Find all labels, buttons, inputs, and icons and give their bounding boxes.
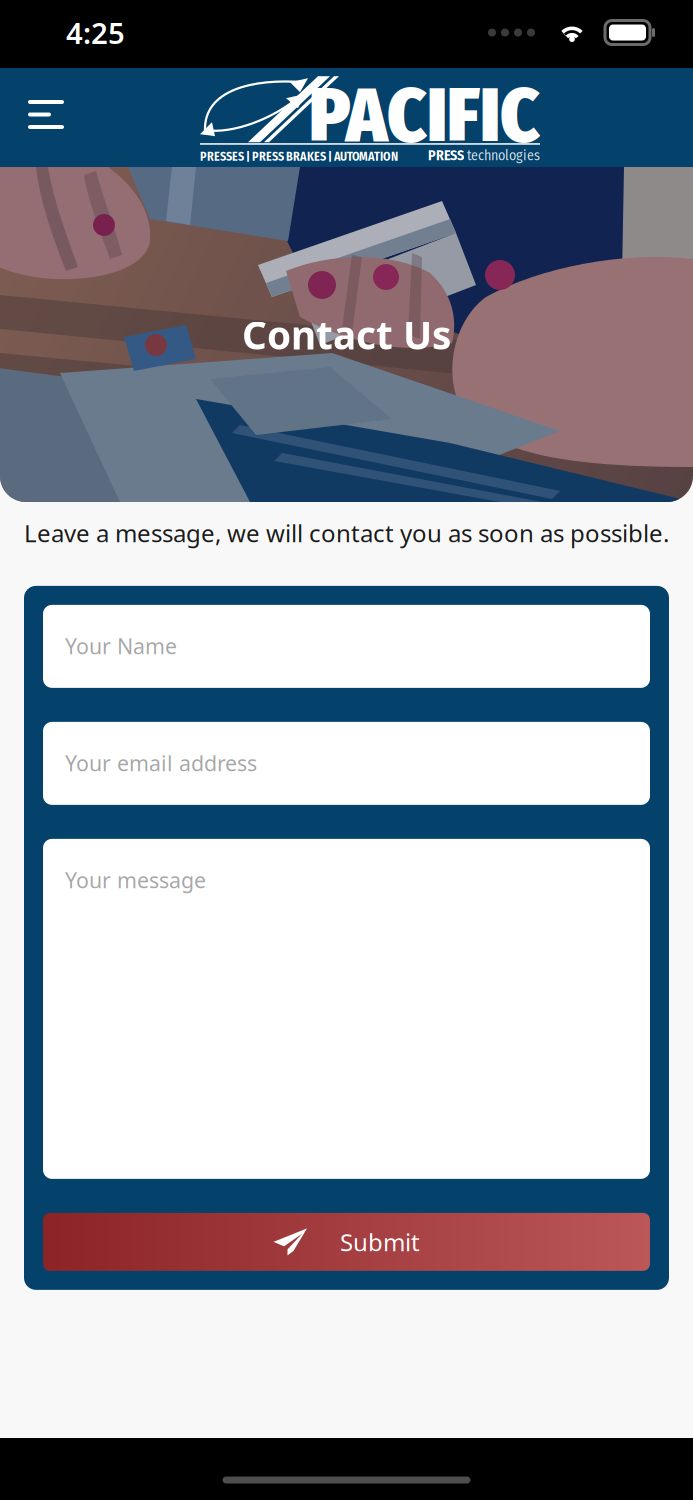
staticText: Submit — [340, 1226, 420, 1258]
staticText: 4:25 — [66, 13, 125, 52]
staticText: Your email address — [65, 749, 257, 777]
button[interactable]: Your Name — [43, 605, 650, 688]
staticText: technologies — [464, 147, 540, 164]
staticText: Contact Us — [242, 309, 451, 360]
staticText: PACIFIC — [309, 71, 540, 161]
button[interactable]: Your email address — [43, 722, 650, 805]
staticText: Leave a message, we will contact you as … — [24, 517, 669, 549]
button[interactable]: Your message — [43, 839, 650, 1179]
staticText: PRESS — [428, 147, 464, 164]
button[interactable]: Menu — [0, 68, 90, 155]
staticText: Your Name — [65, 632, 177, 660]
staticText: PRESSES | PRESS BRAKES | AUTOMATION — [200, 150, 398, 164]
staticText: Your message — [65, 866, 206, 894]
button[interactable]: Submit — [43, 1213, 650, 1271]
